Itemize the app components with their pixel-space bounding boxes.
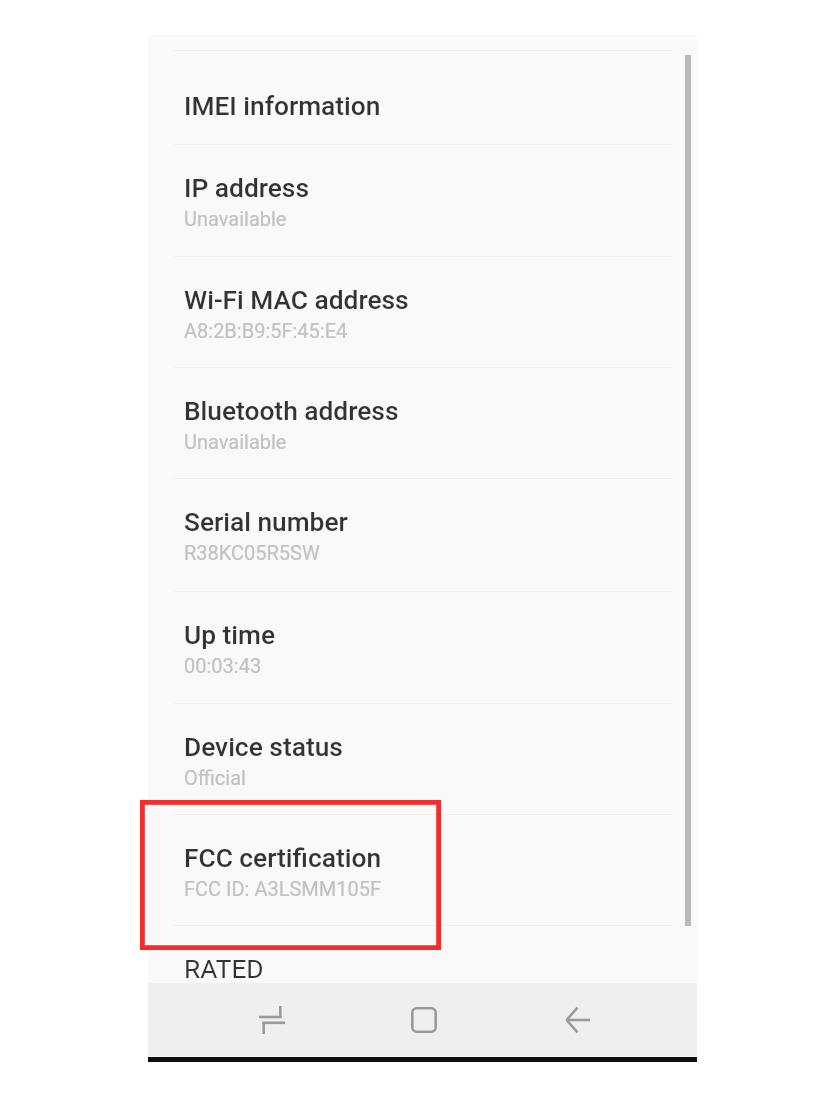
staticText: A8:2B:B9:5F:45:E4	[184, 319, 348, 342]
staticText: Unavailable	[184, 430, 287, 453]
button[interactable]: Back	[502, 983, 654, 1056]
button[interactable]: Home	[348, 983, 500, 1056]
staticText: Up time	[184, 620, 275, 651]
button[interactable]: Recents	[196, 983, 348, 1056]
staticText: R38KC05R5SW	[184, 541, 320, 564]
staticText: Device status	[184, 732, 343, 763]
staticText: Serial number	[184, 507, 348, 538]
staticText: IMEI information	[184, 91, 381, 122]
staticText: Unavailable	[184, 207, 287, 230]
staticText: Bluetooth address	[184, 396, 399, 427]
button[interactable]: Bluetooth address	[148, 367, 697, 478]
button[interactable]: Device status	[148, 703, 697, 814]
staticText: FCC ID: A3LSMM105F	[184, 877, 382, 900]
button[interactable]: Wi-Fi MAC address	[148, 256, 697, 367]
staticText: 00:03:43	[184, 654, 262, 677]
staticText: RATED	[184, 954, 264, 985]
button[interactable]: IMEI information	[148, 50, 697, 144]
staticText: Wi-Fi MAC address	[184, 285, 409, 316]
staticText: Official	[184, 766, 246, 789]
button[interactable]: IP address	[148, 144, 697, 256]
button[interactable]: Serial number	[148, 478, 697, 591]
button[interactable]: Up time	[148, 591, 697, 703]
staticText: FCC certification	[184, 843, 382, 874]
button[interactable]: FCC certification	[148, 814, 697, 926]
staticText: IP address	[184, 173, 310, 204]
